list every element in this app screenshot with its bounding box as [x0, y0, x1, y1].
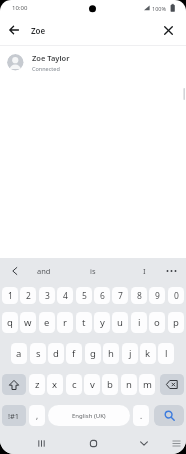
staticText: t	[82, 316, 86, 329]
button[interactable]: w	[20, 312, 36, 333]
staticText: 9	[155, 290, 160, 302]
button[interactable]: h	[103, 343, 119, 364]
button[interactable]	[83, 432, 103, 454]
button[interactable]	[154, 405, 184, 426]
staticText: d	[53, 347, 59, 360]
staticText: 10:00	[12, 4, 28, 12]
button[interactable]: 8	[131, 287, 147, 304]
button[interactable]	[158, 20, 178, 40]
staticText: k	[145, 347, 151, 360]
staticText: 6	[100, 290, 105, 302]
staticText: n	[126, 378, 132, 391]
staticText: x	[52, 378, 58, 391]
button[interactable]: is	[73, 258, 113, 284]
button[interactable]: 5	[76, 287, 92, 304]
button[interactable]	[160, 258, 184, 284]
staticText: h	[108, 347, 114, 360]
staticText: o	[154, 316, 160, 329]
staticText: e	[44, 316, 50, 329]
button[interactable]	[134, 432, 154, 454]
button[interactable]: v	[84, 374, 100, 395]
button[interactable]: t	[76, 312, 92, 333]
staticText: 4	[63, 290, 68, 302]
button[interactable]: q	[2, 312, 18, 333]
staticText: !#1	[8, 411, 20, 421]
button[interactable]: 0	[168, 287, 184, 304]
button[interactable]: k	[140, 343, 156, 364]
button[interactable]: a	[11, 343, 27, 364]
staticText: Zoe	[31, 25, 46, 36]
button[interactable]: i	[131, 312, 147, 333]
staticText: f	[72, 347, 76, 360]
button[interactable]: .	[133, 405, 149, 426]
button[interactable]	[2, 374, 26, 395]
staticText: 100%	[152, 5, 167, 12]
staticText: u	[117, 316, 123, 329]
staticText: Connected	[32, 65, 60, 72]
staticText: 5	[82, 290, 87, 302]
staticText: 3	[45, 290, 50, 302]
staticText: 2	[26, 290, 31, 302]
button[interactable]: 9	[149, 287, 165, 304]
staticText: is	[90, 266, 96, 276]
staticText: z	[35, 378, 40, 391]
staticText: ,	[36, 410, 39, 421]
staticText: and	[37, 266, 51, 276]
staticText: 0	[174, 290, 179, 302]
staticText: w	[24, 316, 32, 329]
button[interactable]: m	[139, 374, 155, 395]
button[interactable]	[4, 20, 24, 40]
button[interactable]: g	[85, 343, 101, 364]
staticText: I	[143, 266, 146, 276]
button[interactable]: u	[112, 312, 128, 333]
button[interactable]: l	[158, 343, 174, 364]
staticText: j	[129, 347, 132, 360]
button[interactable]: Zoe Taylor	[0, 46, 186, 79]
button[interactable]: 4	[57, 287, 73, 304]
button[interactable]: 3	[39, 287, 55, 304]
staticText: b	[107, 378, 113, 391]
button[interactable]	[168, 434, 185, 452]
staticText: y	[100, 316, 105, 329]
button[interactable]: j	[122, 343, 138, 364]
button[interactable]: n	[121, 374, 137, 395]
staticText: Zoe Taylor	[32, 53, 70, 63]
staticText: 8	[137, 290, 142, 302]
button[interactable]: 1	[2, 287, 18, 304]
button[interactable]: 6	[94, 287, 110, 304]
staticText: r	[63, 316, 67, 329]
staticText: l	[165, 347, 168, 360]
staticText: a	[16, 347, 22, 360]
button[interactable]: x	[47, 374, 63, 395]
button[interactable]: !#1	[2, 405, 26, 426]
button[interactable]: e	[39, 312, 55, 333]
button[interactable]: r	[57, 312, 73, 333]
staticText: p	[173, 316, 179, 329]
button[interactable]	[160, 374, 184, 395]
button[interactable]: f	[66, 343, 82, 364]
button[interactable]: o	[149, 312, 165, 333]
staticText: s	[36, 347, 41, 360]
staticText: m	[143, 378, 152, 391]
staticText: q	[7, 316, 13, 329]
button[interactable]: b	[102, 374, 118, 395]
button[interactable]	[6, 261, 24, 281]
staticText: g	[90, 347, 96, 360]
button[interactable]	[31, 432, 51, 454]
button[interactable]: English (UK)	[48, 405, 130, 426]
button[interactable]: and	[24, 258, 64, 284]
button[interactable]: s	[30, 343, 46, 364]
button[interactable]: y	[94, 312, 110, 333]
button[interactable]: c	[66, 374, 82, 395]
button[interactable]: d	[48, 343, 64, 364]
button[interactable]: ,	[29, 405, 45, 426]
button[interactable]: 2	[20, 287, 36, 304]
button[interactable]: z	[29, 374, 45, 395]
button[interactable]: p	[168, 312, 184, 333]
staticText: .	[140, 410, 143, 421]
button[interactable]: I	[124, 258, 164, 284]
staticText: 7	[118, 290, 123, 302]
staticText: English (UK)	[72, 412, 106, 420]
staticText: i	[138, 316, 141, 329]
button[interactable]: 7	[112, 287, 128, 304]
